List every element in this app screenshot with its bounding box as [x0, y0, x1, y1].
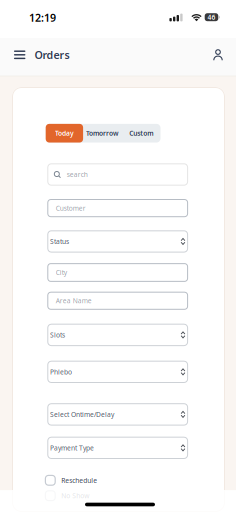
button[interactable]: Payment Type	[47, 437, 188, 459]
button[interactable]: search	[47, 163, 188, 186]
button[interactable]: Reschedule	[45, 475, 189, 486]
staticText: Custom	[129, 129, 153, 138]
staticText: Area Name	[56, 296, 92, 305]
button[interactable]: Tomorrow	[83, 124, 122, 142]
staticText: No Show	[61, 491, 89, 500]
staticText: Slots	[50, 330, 65, 339]
staticText: Customer	[56, 204, 86, 213]
button[interactable]: Menu	[11, 47, 29, 63]
staticText: Reschedule	[61, 476, 97, 485]
button[interactable]: Profile	[208, 45, 228, 65]
staticText: 46	[207, 13, 215, 22]
staticText: City	[56, 268, 67, 277]
button[interactable]: Today	[46, 124, 83, 142]
staticText: Payment Type	[50, 443, 94, 452]
staticText: Phlebo	[50, 367, 72, 376]
button[interactable]: Status	[47, 230, 188, 253]
button[interactable]: Custom	[122, 124, 160, 142]
button[interactable]: No Show	[45, 490, 189, 501]
staticText: search	[67, 170, 88, 179]
button[interactable]: Customer	[47, 199, 188, 217]
button[interactable]: Slots	[47, 324, 188, 346]
button[interactable]: Select Ontime/Delay	[47, 403, 188, 426]
button[interactable]: City	[47, 263, 188, 282]
staticText: Select Ontime/Delay	[50, 410, 114, 419]
button[interactable]: Area Name	[47, 292, 188, 310]
button[interactable]: Phlebo	[47, 361, 188, 383]
staticText: Status	[50, 237, 69, 246]
staticText: Tomorrow	[86, 129, 119, 138]
staticText: 12:19	[29, 10, 56, 25]
staticText: Orders	[34, 48, 69, 62]
staticText: Today	[55, 129, 74, 138]
